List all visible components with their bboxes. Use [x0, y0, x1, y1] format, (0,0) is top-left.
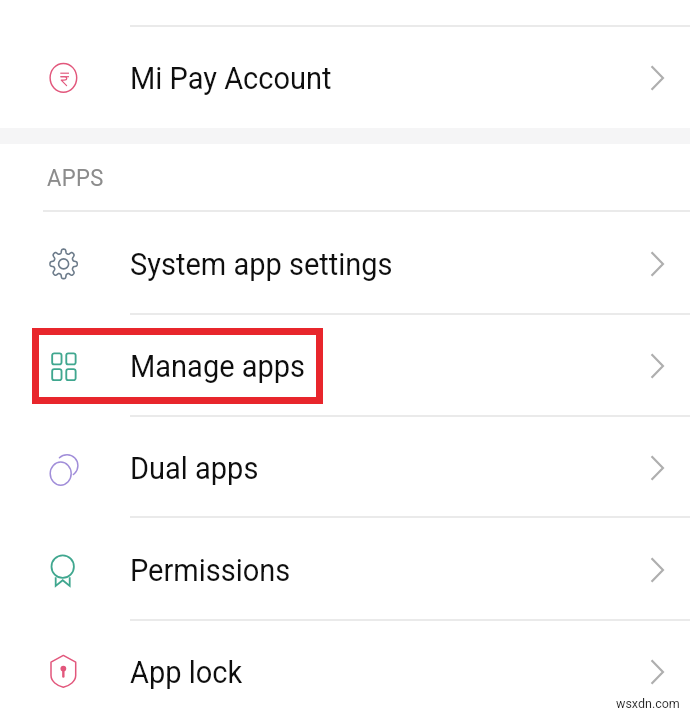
button[interactable]: Manage apps [0, 315, 690, 417]
staticText: wsxdn.com [616, 696, 680, 711]
other: Open Permissions [624, 556, 690, 584]
button[interactable]: Mi Pay Account [0, 27, 690, 128]
button[interactable]: App lock [0, 616, 690, 712]
other: Open Manage apps [624, 352, 690, 380]
other: Open System app settings [624, 250, 690, 278]
staticText: APPS [47, 164, 104, 192]
staticText: Dual apps [130, 449, 259, 487]
staticText: Manage apps [130, 347, 306, 385]
staticText: Permissions [130, 551, 291, 589]
button[interactable]: System app settings [0, 212, 690, 315]
staticText: System app settings [130, 245, 393, 283]
staticText: Mi Pay Account [130, 59, 332, 97]
button[interactable]: Permissions [0, 518, 690, 621]
other: Open App lock [624, 658, 690, 686]
button[interactable]: Dual apps [0, 417, 690, 518]
other: Open Dual apps [624, 454, 690, 482]
staticText: App lock [130, 653, 243, 691]
other: Open Mi Pay Account [624, 64, 690, 92]
